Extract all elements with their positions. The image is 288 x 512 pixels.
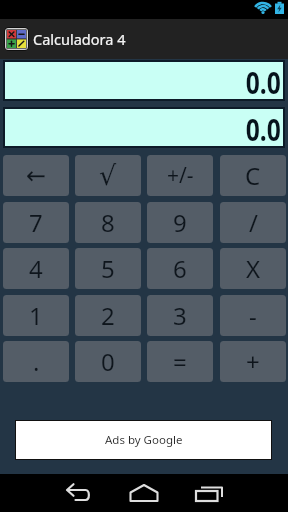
- button[interactable]: +: [220, 341, 286, 382]
- button[interactable]: 7: [3, 202, 69, 243]
- button[interactable]: 2: [75, 295, 141, 336]
- button[interactable]: [62, 478, 96, 508]
- button[interactable]: 5: [75, 248, 141, 289]
- button[interactable]: 1: [3, 295, 69, 336]
- button[interactable]: 0.0: [5, 109, 283, 146]
- staticText: X: [246, 252, 261, 285]
- button[interactable]: .: [3, 341, 69, 382]
- staticText: Calculadora 4: [33, 29, 126, 49]
- button[interactable]: ←: [3, 155, 69, 196]
- staticText: 9: [173, 206, 187, 239]
- staticText: =: [173, 345, 187, 378]
- button[interactable]: 6: [147, 248, 213, 289]
- staticText: 0: [101, 345, 115, 378]
- staticText: +/-: [167, 161, 194, 190]
- button[interactable]: Ads by Google: [16, 421, 271, 459]
- staticText: 3: [173, 299, 187, 332]
- button[interactable]: 9: [147, 202, 213, 243]
- button[interactable]: -: [220, 295, 286, 336]
- staticText: 6: [173, 252, 187, 285]
- button[interactable]: 0: [75, 341, 141, 382]
- button[interactable]: 0.0: [5, 62, 283, 99]
- staticText: 2: [101, 299, 115, 332]
- staticText: /: [249, 206, 258, 239]
- staticText: Ads by Google: [105, 432, 183, 448]
- button[interactable]: [192, 478, 226, 508]
- staticText: 0.0: [246, 62, 281, 99]
- staticText: 5: [101, 252, 115, 285]
- button[interactable]: C: [220, 155, 286, 196]
- button[interactable]: 4: [3, 248, 69, 289]
- staticText: .: [33, 345, 40, 378]
- button[interactable]: √: [75, 155, 141, 196]
- button[interactable]: 3: [147, 295, 213, 336]
- button[interactable]: [127, 478, 161, 508]
- staticText: +: [246, 345, 260, 378]
- button[interactable]: X: [220, 248, 286, 289]
- button[interactable]: =: [147, 341, 213, 382]
- staticText: 8: [101, 206, 115, 239]
- staticText: 4: [29, 252, 43, 285]
- staticText: 0.0: [246, 109, 281, 146]
- button[interactable]: 8: [75, 202, 141, 243]
- staticText: 7: [29, 206, 43, 239]
- staticText: -: [249, 299, 257, 332]
- staticText: 1: [29, 299, 43, 332]
- button[interactable]: /: [220, 202, 286, 243]
- staticText: C: [245, 159, 261, 192]
- staticText: √: [99, 160, 117, 191]
- button[interactable]: +/-: [147, 155, 213, 196]
- staticText: ←: [26, 162, 47, 190]
